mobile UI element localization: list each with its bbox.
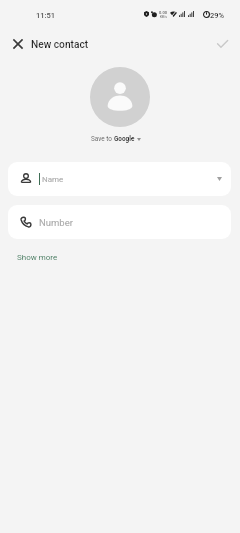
staticText: Number <box>39 217 73 228</box>
staticText: Save to <box>91 135 114 143</box>
button[interactable]: Add photo <box>90 67 150 127</box>
staticText: 29% <box>210 11 225 20</box>
staticText: New contact <box>31 39 89 51</box>
staticText: Name <box>42 175 64 184</box>
button[interactable]: Close <box>6 32 30 56</box>
staticText: KB/s <box>160 15 167 19</box>
button[interactable]: Save <box>210 32 234 56</box>
staticText: Show more <box>17 253 58 262</box>
staticText: Google <box>114 135 135 143</box>
button[interactable]: Number <box>8 205 231 239</box>
button[interactable]: Save to <box>91 135 141 143</box>
staticText: 11:51 <box>36 11 56 20</box>
button[interactable]: Show more <box>15 251 60 264</box>
staticText: 0.00 <box>159 10 167 15</box>
button[interactable]: Name <box>8 162 231 196</box>
